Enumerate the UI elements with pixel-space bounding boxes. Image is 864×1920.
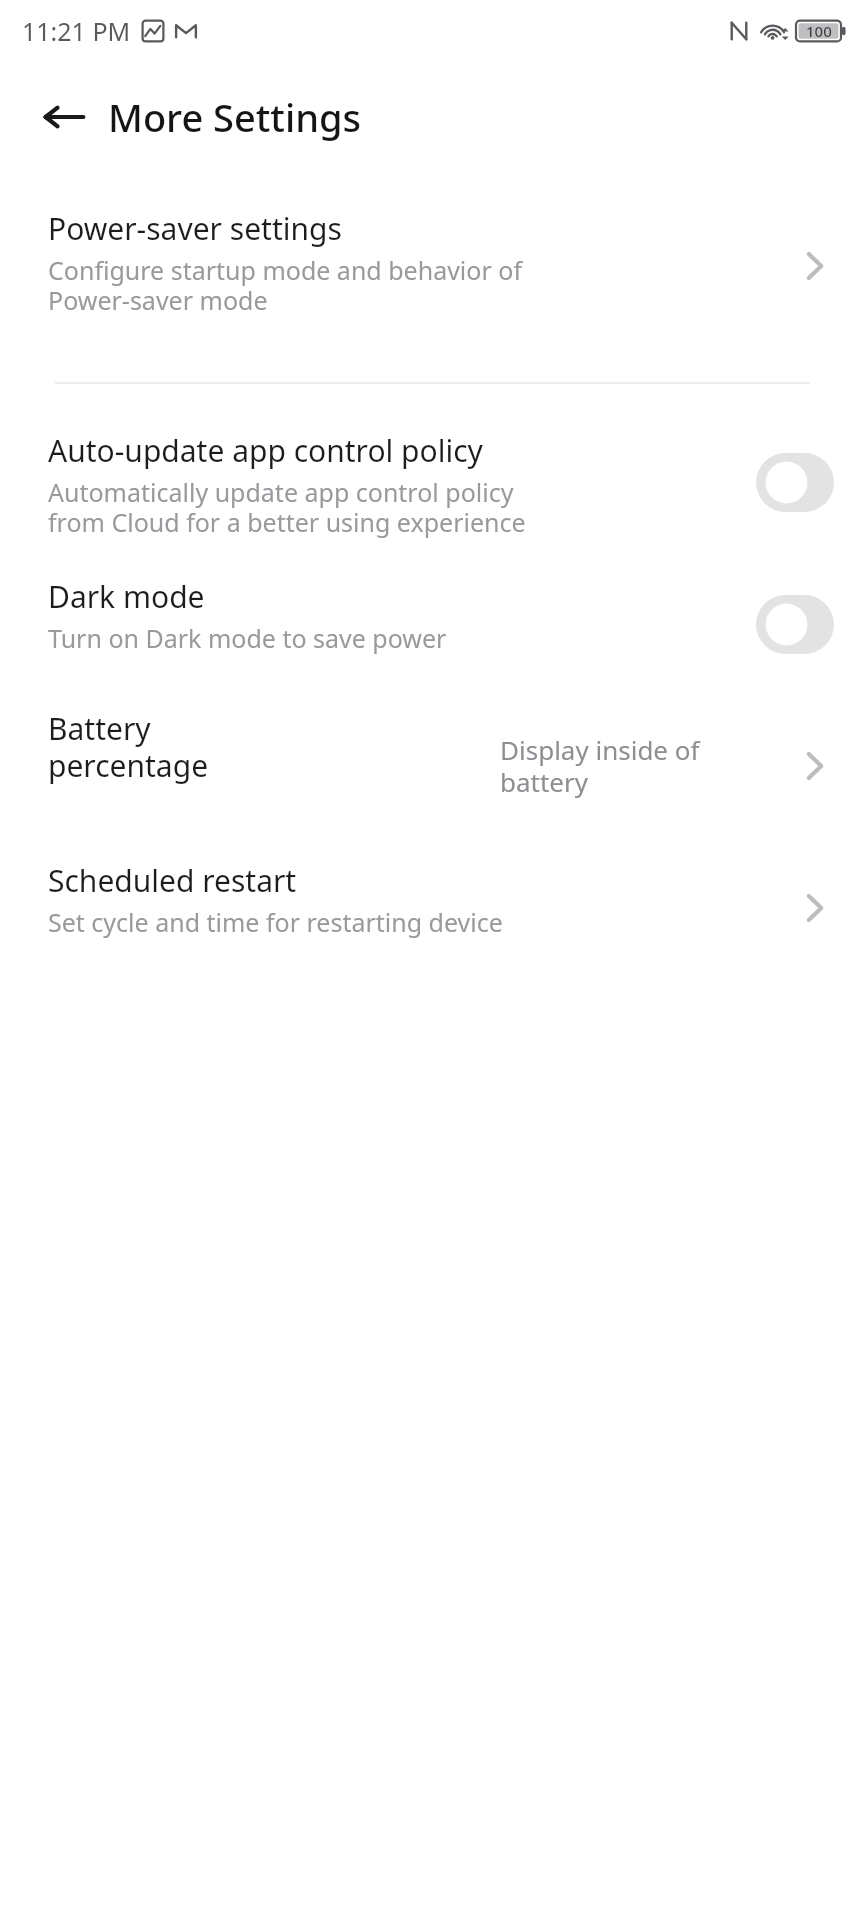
staticText: Dark mode [48, 576, 205, 617]
staticText: Battery percentage [48, 708, 209, 786]
staticText: Scheduled restart [48, 860, 297, 901]
other: Dark mode toggle [756, 595, 834, 654]
staticText: More Settings [108, 91, 362, 143]
staticText: Turn on Dark mode to save power [48, 621, 447, 655]
staticText: Display inside of battery [500, 732, 790, 800]
staticText: Automatically update app control policy … [48, 475, 526, 540]
other: Auto-update app control policy toggle [756, 453, 834, 512]
button[interactable]: Dark mode [0, 558, 864, 690]
staticText: Configure startup mode and behavior of P… [48, 253, 522, 318]
staticText: Power-saver settings [48, 208, 342, 249]
staticText: Set cycle and time for restarting device [48, 905, 503, 939]
button[interactable]: Power-saver settings [0, 172, 864, 360]
button[interactable]: Back [36, 89, 92, 145]
staticText: 100 [806, 21, 832, 41]
button[interactable]: Auto-update app control policy [0, 406, 864, 558]
button[interactable]: Battery percentage [0, 690, 864, 838]
button[interactable]: Scheduled restart [0, 838, 864, 978]
staticText: Auto-update app control policy [48, 430, 483, 471]
staticText: 11:21 PM [22, 14, 131, 48]
